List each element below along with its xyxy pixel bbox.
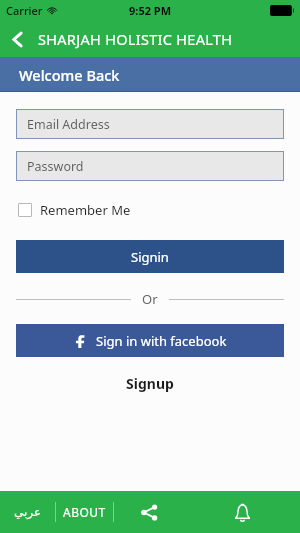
staticText: Password (27, 158, 84, 175)
button[interactable]: Email Address (16, 109, 284, 139)
staticText: 9:52 PM (129, 3, 172, 18)
button[interactable]: عربي (0, 491, 55, 533)
button[interactable]: Password (16, 151, 284, 181)
button[interactable]: Remember Me (18, 199, 139, 221)
button[interactable]: Notifications (184, 491, 300, 533)
button[interactable]: Sign in with facebook (16, 324, 284, 357)
staticText: Signin (131, 248, 169, 266)
button[interactable]: ABOUT (56, 491, 113, 533)
staticText: Carrier (6, 3, 43, 18)
button[interactable]: Signup (0, 372, 300, 395)
staticText: Welcome Back (19, 65, 120, 85)
staticText: Email Address (27, 116, 110, 133)
staticText: Or (142, 290, 158, 308)
staticText: ABOUT (63, 504, 106, 520)
staticText: Sign in with facebook (96, 332, 227, 350)
button[interactable]: Share (114, 491, 184, 533)
staticText: Remember Me (40, 201, 131, 219)
button[interactable]: Back (0, 22, 34, 56)
staticText: عربي (14, 505, 42, 519)
button[interactable]: Signin (16, 240, 284, 273)
staticText: SHARJAH HOLISTIC HEALTH (38, 29, 233, 49)
